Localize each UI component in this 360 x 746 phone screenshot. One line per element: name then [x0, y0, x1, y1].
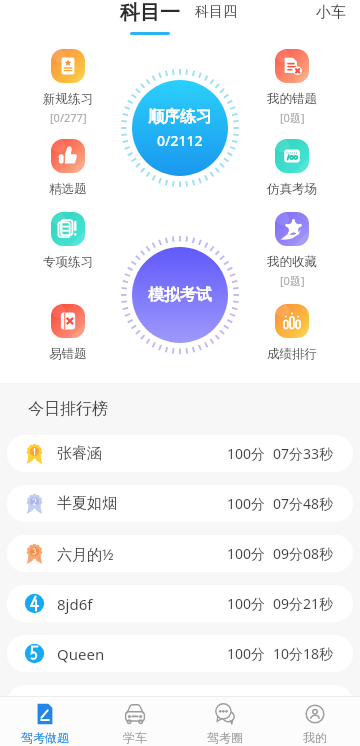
button[interactable]: 张睿涵	[7, 435, 353, 472]
staticText: 我的收藏	[267, 254, 317, 270]
staticText: 顺序练习	[148, 107, 212, 127]
button[interactable]: 学车	[90, 697, 180, 746]
button[interactable]: 六月的½	[7, 535, 353, 572]
staticText: 仿真考场	[267, 181, 317, 197]
staticText: 我的	[303, 730, 327, 745]
staticText: 我的错题	[267, 91, 317, 107]
staticText: 张睿涵	[57, 444, 102, 463]
staticText: 100分	[227, 544, 266, 563]
staticText: 专项练习	[43, 254, 93, 270]
staticText: 六月的½	[57, 544, 114, 564]
button[interactable]: 我的收藏	[255, 212, 329, 288]
staticText: 精选题	[49, 181, 87, 197]
button[interactable]: 8jd6f	[7, 585, 353, 622]
button[interactable]: 我的	[270, 697, 360, 746]
button[interactable]: 精选题	[31, 139, 105, 197]
button[interactable]: 新规练习	[31, 49, 105, 125]
button[interactable]: 顺序练习	[132, 80, 228, 176]
staticText: 驾考圈	[207, 730, 243, 745]
staticText: 100分	[227, 444, 266, 463]
button[interactable]: 成绩排行	[255, 304, 329, 362]
staticText: 100分	[227, 494, 266, 513]
button[interactable]: 驾考圈	[180, 697, 270, 746]
staticText: [0/277]	[50, 110, 87, 125]
staticText: 0/2112	[157, 131, 203, 150]
staticText: 学车	[123, 730, 147, 745]
staticText: 07分33秒	[273, 444, 334, 463]
staticText: 新规练习	[43, 91, 93, 107]
staticText: 09分08秒	[273, 544, 334, 563]
staticText: 成绩排行	[267, 346, 317, 362]
button[interactable]: Queen	[7, 635, 353, 672]
button[interactable]: 易错题	[31, 304, 105, 362]
button[interactable]: 驾考做题	[0, 697, 90, 746]
button[interactable]: 专项练习	[31, 212, 105, 270]
staticText: 驾考做题	[21, 730, 69, 745]
staticText: 100分	[227, 644, 266, 663]
staticText: 科目一	[120, 0, 180, 25]
staticText: 半夏如烟	[57, 494, 117, 513]
staticText: 模拟考试	[148, 285, 212, 305]
button[interactable]: 半夏如烟	[7, 485, 353, 522]
staticText: Queen	[57, 644, 105, 664]
button[interactable]: 我的错题	[255, 49, 329, 125]
staticText: 100分	[227, 594, 266, 613]
button[interactable]: 模拟考试	[132, 247, 228, 343]
button[interactable]: 小车	[316, 3, 346, 22]
staticText: 易错题	[49, 346, 87, 362]
button[interactable]: 仿真考场	[255, 139, 329, 197]
button[interactable]: 科目一	[120, 0, 180, 35]
staticText: 今日排行榜	[28, 399, 108, 419]
button[interactable]: 科目四	[195, 3, 237, 21]
staticText: [0题]	[280, 110, 305, 125]
staticText: 09分21秒	[273, 594, 334, 613]
staticText: 10分18秒	[273, 644, 334, 663]
staticText: 小车	[316, 3, 346, 22]
staticText: 8jd6f	[57, 594, 93, 614]
staticText: [0题]	[280, 273, 305, 288]
staticText: 07分48秒	[273, 494, 334, 513]
staticText: 科目四	[195, 3, 237, 21]
